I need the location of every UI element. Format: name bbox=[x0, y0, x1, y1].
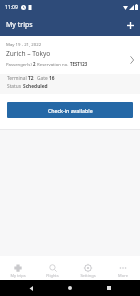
button[interactable]: Back bbox=[23, 280, 39, 296]
button[interactable]: Add trip bbox=[120, 15, 140, 35]
button[interactable]: Settings bbox=[70, 256, 105, 280]
staticText: Zurich – Tokyo bbox=[6, 49, 51, 58]
staticText: Gate bbox=[37, 75, 49, 82]
staticText: My trips bbox=[10, 273, 26, 278]
staticText: More bbox=[118, 273, 128, 278]
staticText: Scheduled bbox=[23, 83, 48, 90]
staticText: Flights bbox=[46, 273, 59, 278]
button[interactable]: Check-in available bbox=[7, 102, 133, 118]
staticText: Terminal bbox=[7, 75, 28, 82]
staticText: Status bbox=[7, 83, 23, 90]
button[interactable]: Flights bbox=[35, 256, 70, 280]
staticText: Settings bbox=[80, 273, 96, 278]
staticText: May 19 - 21, 2022 bbox=[6, 41, 42, 47]
staticText: TEST123 bbox=[70, 61, 88, 67]
button[interactable]: My trips bbox=[0, 256, 35, 280]
staticText: 11:09 bbox=[5, 4, 18, 11]
button[interactable]: Recent apps bbox=[101, 280, 117, 296]
button[interactable]: May 19 - 21, 2022 bbox=[0, 36, 140, 130]
staticText: Reservation no. bbox=[36, 61, 70, 67]
button[interactable]: More bbox=[105, 256, 140, 280]
staticText: Passenger(s) bbox=[6, 61, 33, 67]
button[interactable]: Home bbox=[62, 280, 78, 296]
staticText: Check-in available bbox=[48, 107, 93, 114]
staticText: 2 bbox=[33, 61, 36, 67]
staticText: My trips bbox=[6, 20, 33, 30]
staticText: T2 bbox=[28, 75, 34, 82]
staticText: 16 bbox=[49, 75, 55, 82]
